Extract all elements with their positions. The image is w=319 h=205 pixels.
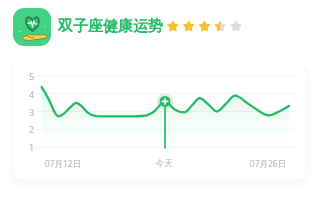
staticText: 07月26日 (238, 158, 298, 170)
staticText: 07月12日 (33, 158, 93, 170)
staticText: 5 (26, 70, 37, 82)
staticText: 3 (26, 106, 37, 118)
button[interactable] (14, 62, 305, 179)
staticText: 1 (26, 141, 37, 153)
staticText: 双子座健康运势 (58, 17, 163, 36)
staticText: 2 (26, 123, 37, 135)
staticText: 4 (26, 88, 37, 100)
button[interactable]: Health fortune (13, 8, 51, 46)
staticText: 今天 (134, 158, 194, 169)
